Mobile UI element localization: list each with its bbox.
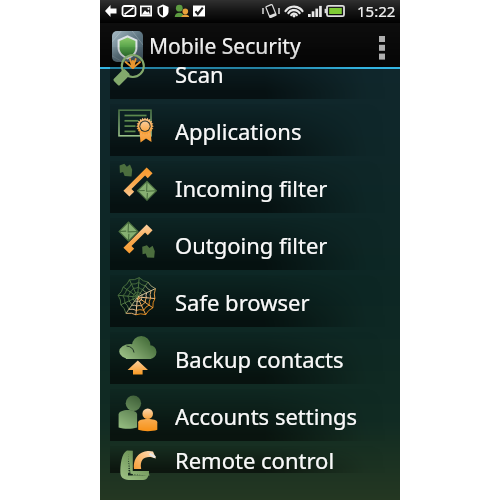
button[interactable]: Applications — [100, 104, 400, 161]
staticText: Outgoing filter — [175, 230, 328, 260]
button[interactable]: Incoming filter — [100, 161, 400, 218]
staticText: Incoming filter — [175, 173, 328, 203]
staticText: Backup contacts — [175, 344, 344, 374]
button[interactable]: Accounts settings — [100, 389, 400, 446]
button[interactable]: Safe browser — [100, 275, 400, 332]
staticText: Remote control — [175, 445, 335, 475]
staticText: Scan — [175, 59, 224, 89]
button[interactable]: Outgoing filter — [100, 218, 400, 275]
button[interactable]: Backup contacts — [100, 332, 400, 389]
button[interactable]: Scan — [100, 47, 400, 104]
staticText: Mobile Security — [149, 32, 301, 61]
staticText: Accounts settings — [175, 401, 358, 431]
button[interactable]: Remote control — [100, 446, 400, 478]
staticText: Applications — [175, 116, 302, 146]
button[interactable]: More options — [364, 23, 400, 69]
staticText: Safe browser — [175, 287, 310, 317]
staticText: 15:22 — [357, 1, 396, 21]
